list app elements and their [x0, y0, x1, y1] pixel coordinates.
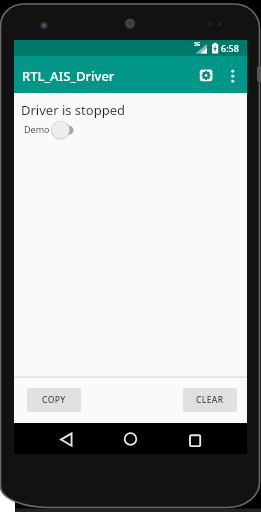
button[interactable]: COPY	[27, 388, 81, 412]
button[interactable]	[185, 429, 206, 450]
button[interactable]	[56, 429, 78, 450]
staticText: Demo	[24, 123, 50, 135]
button[interactable]	[51, 119, 79, 141]
button[interactable]	[224, 63, 242, 87]
staticText: Driver is stopped	[21, 101, 125, 119]
staticText: CLEAR	[196, 394, 224, 406]
staticText: 3G	[194, 41, 201, 48]
staticText: COPY	[42, 394, 66, 406]
staticText: RTL_AIS_Driver	[22, 67, 115, 85]
button[interactable]	[196, 65, 217, 85]
button[interactable]	[120, 429, 141, 450]
button[interactable]: CLEAR	[183, 388, 237, 412]
staticText: 6:58	[221, 42, 239, 54]
